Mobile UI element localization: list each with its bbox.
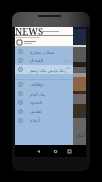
- button[interactable]: طقس: [15, 107, 73, 116]
- button[interactable]: Recents: [66, 145, 72, 157]
- button[interactable]: وظائف: [15, 80, 73, 89]
- button[interactable]: محلات تجارية: [15, 47, 73, 56]
- button[interactable]: بنك الدم: [15, 89, 73, 98]
- staticText: الحدود: [30, 100, 43, 105]
- staticText: الفنادق: [30, 58, 44, 63]
- staticText: أخبار: [76, 133, 87, 138]
- button[interactable]: الفنادق: [15, 56, 73, 65]
- staticText: محلات تجارية: [30, 49, 55, 55]
- button[interactable]: الحدود: [15, 98, 73, 107]
- button[interactable]: Back: [35, 145, 41, 157]
- staticText: بنك ودش بنك رسم: [30, 67, 65, 73]
- button[interactable]: أرقام: [15, 116, 73, 125]
- button[interactable]: Home: [52, 145, 58, 157]
- staticText: أرقام: [30, 118, 40, 123]
- staticText: بنك الدم: [30, 91, 46, 97]
- button[interactable]: بنك ودش بنك رسم: [15, 65, 73, 74]
- staticText: جديد: [65, 66, 70, 74]
- staticText: وظائف: [30, 82, 44, 87]
- staticText: جديد: [63, 59, 70, 63]
- staticText: طقس: [30, 109, 42, 114]
- staticText: NEWS: [15, 25, 44, 37]
